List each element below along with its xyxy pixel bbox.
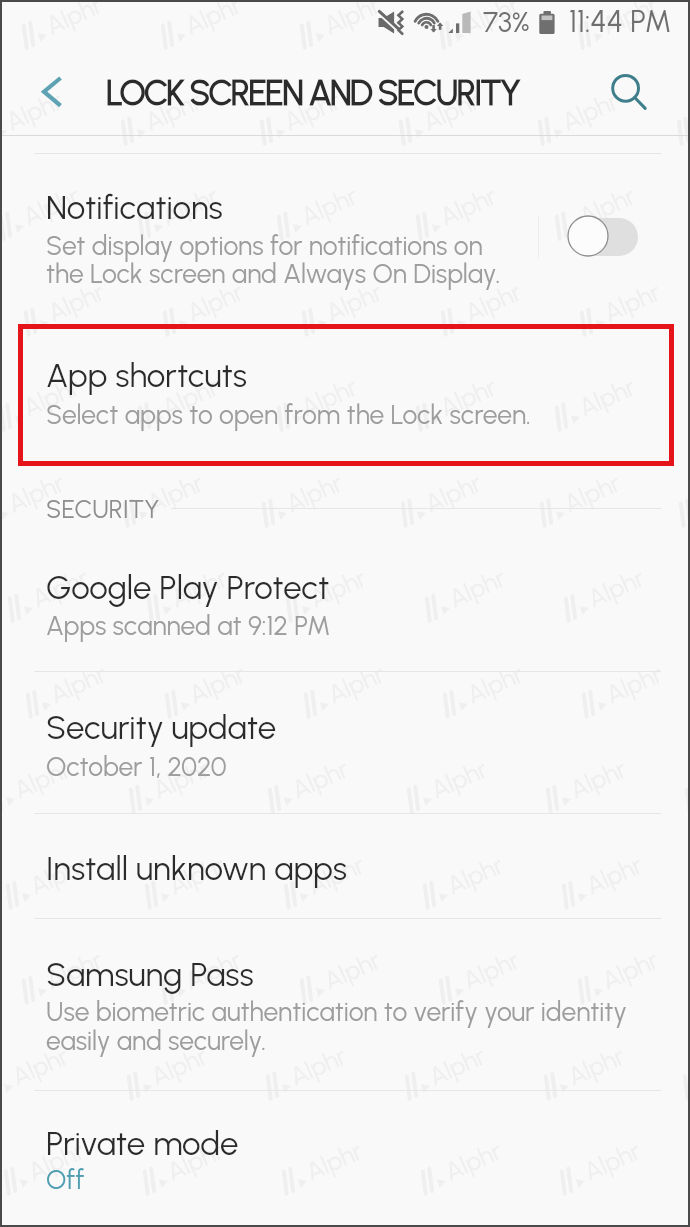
staticText: Notifications — [46, 188, 223, 228]
staticText: Alphr — [157, 371, 223, 423]
staticText: Alphr — [305, 562, 371, 614]
staticText: Alphr — [458, 0, 524, 41]
staticText: Alphr — [23, 1135, 89, 1187]
staticText: Alphr — [27, 562, 93, 614]
button[interactable] — [0, 557, 690, 656]
staticText: Alphr — [41, 944, 107, 996]
staticText: Alphr — [418, 85, 484, 137]
staticText: Alphr — [180, 0, 246, 41]
staticText: Alphr — [166, 562, 232, 614]
staticText: Alphr — [319, 0, 385, 41]
staticText: LOCK SCREEN AND SECURITY — [106, 73, 519, 114]
staticText: Off — [46, 1164, 85, 1196]
staticText: Alphr — [45, 658, 111, 710]
staticText: Alphr — [182, 276, 248, 328]
staticText: Alphr — [162, 1135, 228, 1187]
staticText: Alphr — [18, 180, 84, 232]
staticText: Alphr — [601, 658, 667, 710]
staticText: Alphr — [279, 85, 345, 137]
staticText: Alphr — [563, 1040, 629, 1092]
button[interactable] — [0, 345, 690, 445]
staticText: Apps scanned at 9:12 PM — [46, 610, 331, 642]
staticText: App shortcuts — [46, 356, 247, 396]
staticText: Alphr — [303, 849, 369, 901]
staticText: Use biometric authentication to verify y… — [46, 996, 627, 1028]
staticText: Alphr — [142, 467, 208, 519]
staticText: Alphr — [43, 276, 109, 328]
staticText: Alphr — [164, 849, 230, 901]
staticText: Alphr — [1, 85, 67, 137]
staticText: Alphr — [296, 371, 362, 423]
staticText: Alphr — [435, 371, 501, 423]
staticText: the Lock screen and Always On Display. — [46, 258, 501, 290]
button[interactable] — [0, 838, 690, 902]
staticText: Alphr — [9, 753, 75, 805]
staticText: Alphr — [597, 0, 663, 41]
staticText: Alphr — [281, 467, 347, 519]
staticText: Google Play Protect — [46, 568, 330, 608]
staticText: Private mode — [46, 1124, 239, 1164]
staticText: 73% — [483, 5, 530, 39]
staticText: Alphr — [146, 1040, 212, 1092]
staticText: Alphr — [460, 276, 526, 328]
staticText: Alphr — [7, 1040, 73, 1092]
staticText: Alphr — [25, 849, 91, 901]
staticText: Alphr — [462, 658, 528, 710]
staticText: Select apps to open from the Lock screen… — [46, 399, 531, 431]
button[interactable]: Notifications toggle, off — [556, 206, 654, 266]
staticText: Alphr — [18, 371, 84, 423]
staticText: Alphr — [323, 658, 389, 710]
button[interactable]: Navigate up — [20, 58, 88, 126]
staticText: Alphr — [41, 0, 107, 41]
button[interactable] — [0, 944, 690, 1072]
staticText: Alphr — [574, 180, 640, 232]
staticText: easily and securely. — [46, 1025, 266, 1057]
button[interactable]: Search — [592, 56, 660, 124]
staticText: Alphr — [559, 467, 625, 519]
button[interactable] — [0, 697, 690, 797]
staticText: Alphr — [180, 944, 246, 996]
staticText: Alphr — [599, 276, 665, 328]
staticText: Samsung Pass — [46, 955, 254, 995]
staticText: Alphr — [285, 1040, 351, 1092]
staticText: Alphr — [148, 753, 214, 805]
staticText: Alphr — [184, 658, 250, 710]
staticText: Alphr — [420, 467, 486, 519]
staticText: October 1, 2020 — [46, 751, 227, 783]
button[interactable] — [0, 1113, 690, 1211]
staticText: Alphr — [424, 1040, 490, 1092]
staticText: Alphr — [3, 467, 69, 519]
staticText: 11:44 PM — [569, 3, 672, 39]
staticText: Alphr — [157, 180, 223, 232]
button[interactable] — [0, 177, 690, 305]
staticText: Alphr — [557, 85, 623, 137]
staticText: Install unknown apps — [46, 849, 347, 889]
staticText: Alphr — [321, 276, 387, 328]
staticText: Alphr — [140, 85, 206, 137]
staticText: Set display options for notifications on — [46, 230, 483, 262]
staticText: Security update — [46, 708, 277, 748]
staticText: SECURITY — [46, 494, 160, 524]
